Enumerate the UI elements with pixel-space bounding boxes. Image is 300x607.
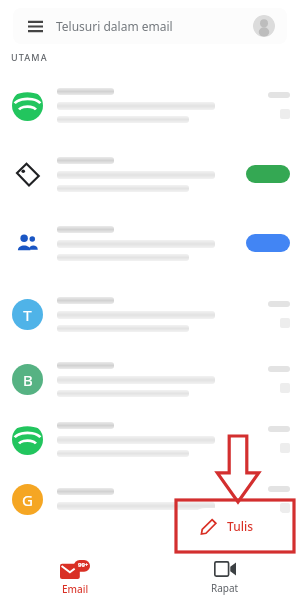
staticText: G [22, 490, 33, 510]
staticText: 99+ [78, 561, 89, 569]
button[interactable] [0, 408, 300, 470]
staticText: Email [62, 582, 89, 596]
button[interactable] [0, 70, 300, 140]
staticText: T [23, 305, 32, 325]
button[interactable]: B [0, 350, 300, 408]
button[interactable] [0, 140, 300, 208]
button[interactable]: T [0, 278, 300, 350]
staticText: Tulis [227, 518, 253, 534]
button[interactable]: Tulis [188, 508, 288, 544]
button[interactable]: Open navigation menu [13, 8, 287, 44]
button[interactable]: Account [253, 15, 275, 37]
button[interactable]: Rapat [150, 552, 300, 604]
staticText: Telusuri dalam email [56, 18, 173, 34]
staticText: UTAMA [11, 51, 48, 63]
button[interactable]: G [0, 470, 300, 528]
button[interactable] [0, 208, 300, 278]
button[interactable]: 99+ [0, 552, 150, 604]
button[interactable]: Open navigation menu [25, 16, 45, 36]
staticText: Rapat [211, 581, 239, 595]
staticText: B [23, 370, 33, 390]
